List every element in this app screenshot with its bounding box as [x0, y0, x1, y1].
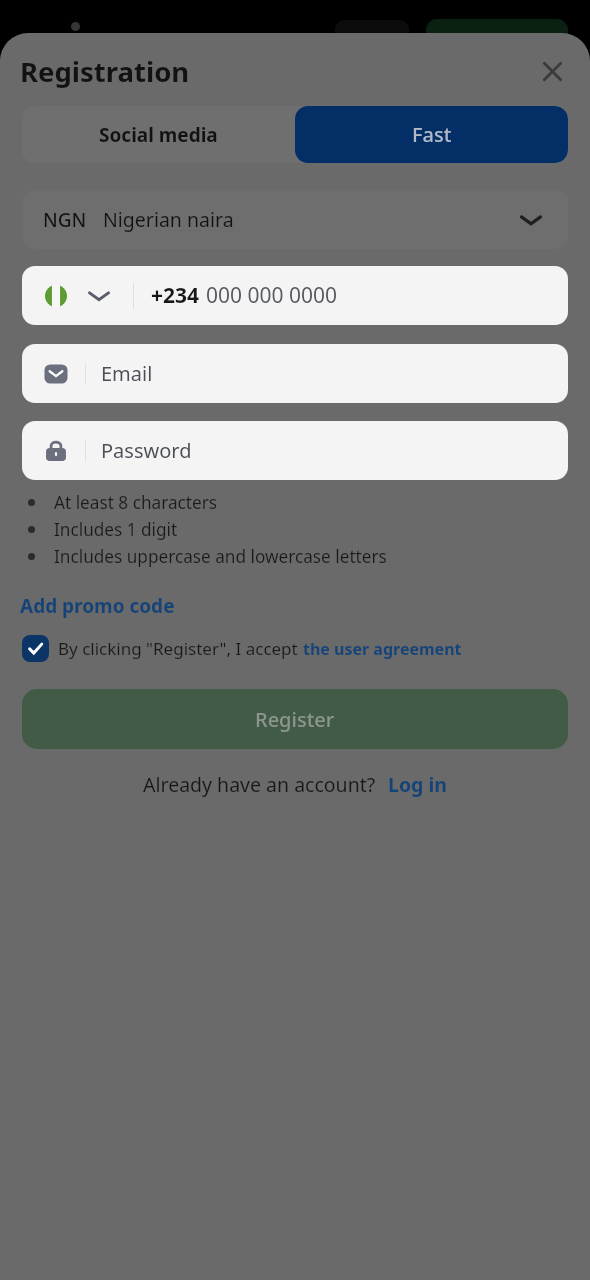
button[interactable]: Email	[22, 344, 568, 403]
staticText: Log in	[388, 771, 447, 798]
staticText: Already have an account?	[143, 771, 376, 798]
other: Accept the user agreement	[22, 635, 49, 662]
staticText: NGN	[43, 207, 87, 233]
staticText: +234	[151, 281, 200, 310]
button[interactable]: Log in	[388, 771, 447, 798]
button[interactable]: Close	[532, 51, 572, 91]
staticText: the user agreement	[303, 638, 462, 660]
button[interactable]: Password	[22, 421, 568, 480]
staticText: At least 8 characters	[54, 491, 218, 514]
button[interactable]: +234	[22, 266, 568, 325]
button[interactable]: Accept the user agreement	[22, 635, 462, 662]
staticText: By clicking "Register", I accept	[58, 637, 303, 660]
staticText: Add promo code	[20, 593, 175, 619]
staticText: Email	[101, 360, 153, 387]
staticText: Password	[101, 437, 192, 464]
staticText: Registration	[20, 53, 190, 90]
button[interactable]: Register	[22, 689, 568, 749]
staticText: Register	[255, 706, 335, 733]
staticText: Includes uppercase and lowercase letters	[54, 545, 387, 568]
staticText: Nigerian naira	[103, 206, 234, 233]
button[interactable]: Social media	[22, 106, 295, 163]
button[interactable]: NGN	[22, 190, 568, 249]
button[interactable]: Add promo code	[20, 593, 175, 619]
button[interactable]: Fast	[295, 106, 568, 163]
staticText: 000 000 0000	[206, 281, 338, 310]
staticText: Includes 1 digit	[54, 518, 178, 541]
staticText: Social media	[99, 122, 218, 148]
staticText: Fast	[412, 121, 452, 148]
